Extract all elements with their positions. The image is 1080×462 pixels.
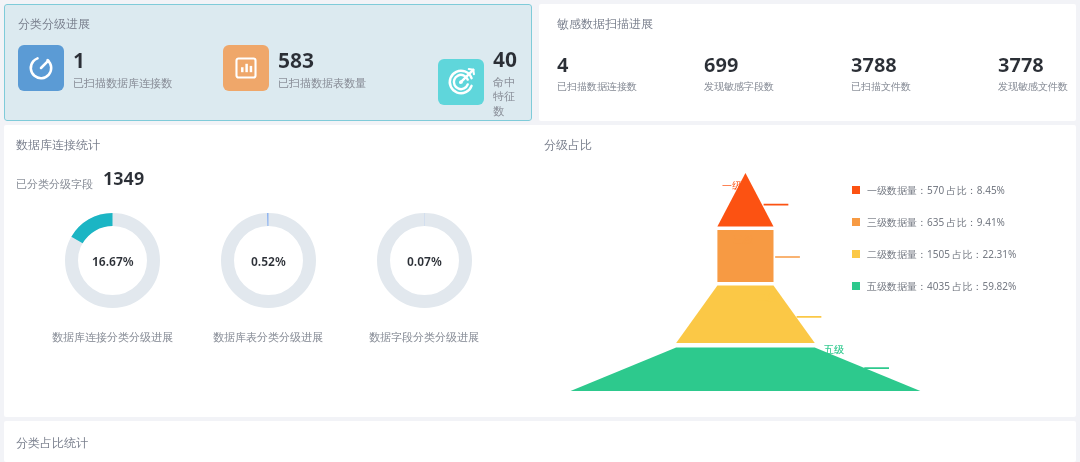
button[interactable]: 命中特征数: [438, 45, 522, 118]
staticText: 583: [278, 46, 315, 75]
staticText: 数据库连接分类分级进展: [52, 330, 173, 344]
staticText: 16.67%: [92, 253, 134, 269]
button[interactable]: 已扫描数据表数量: [223, 45, 366, 91]
button[interactable]: 16.67%: [34, 213, 190, 344]
staticText: 数据字段分类分级进展: [369, 330, 479, 344]
staticText: 二级数据量：1505 占比：22.31%: [867, 247, 1017, 261]
staticText: 已扫描数据连接数: [557, 80, 637, 93]
button[interactable]: 敏感数据扫描进展: [539, 4, 1076, 121]
staticText: 分级占比: [544, 137, 592, 152]
staticText: 敏感数据扫描进展: [557, 16, 653, 31]
staticText: 分类分级进展: [18, 16, 90, 31]
button[interactable]: 699: [704, 51, 851, 93]
staticText: 1349: [103, 166, 145, 191]
staticText: 分类占比统计: [16, 435, 88, 450]
staticText: 40: [493, 45, 518, 74]
button[interactable]: 0.07%: [346, 213, 502, 344]
staticText: 0.07%: [407, 253, 442, 269]
staticText: 0.52%: [251, 253, 286, 269]
button[interactable]: 3778: [998, 51, 1076, 93]
staticText: 3778: [998, 51, 1044, 78]
staticText: 五级: [824, 343, 844, 356]
staticText: 一级: [722, 179, 742, 192]
button[interactable]: 0.52%: [190, 213, 346, 344]
staticText: 699: [704, 51, 739, 78]
staticText: 发现敏感字段数: [704, 80, 774, 93]
staticText: 已扫描数据表数量: [278, 76, 366, 90]
button[interactable]: 已扫描数据库连接数: [18, 45, 172, 91]
button[interactable]: 3788: [851, 51, 998, 93]
staticText: 发现敏感文件数: [998, 80, 1068, 93]
staticText: 一级数据量：570 占比：8.45%: [867, 183, 1005, 197]
staticText: 五级数据量：4035 占比：59.82%: [867, 279, 1017, 293]
staticText: 已扫描文件数: [851, 80, 911, 93]
button[interactable]: 4: [557, 51, 704, 93]
staticText: 3788: [851, 51, 897, 78]
staticText: 1: [73, 46, 86, 75]
other: 已扫描数据表数量: [223, 45, 269, 91]
staticText: 三级数据量：635 占比：9.41%: [867, 215, 1005, 229]
staticText: 命中特征数: [493, 75, 522, 118]
staticText: 数据库连接统计: [16, 137, 100, 152]
other: 已扫描数据库连接数: [18, 45, 64, 91]
staticText: 已扫描数据库连接数: [73, 76, 172, 90]
staticText: 数据库表分类分级进展: [213, 330, 323, 344]
staticText: 已分类分级字段: [16, 177, 93, 191]
button[interactable]: 分类分级进展: [4, 4, 532, 121]
staticText: 4: [557, 51, 569, 78]
other: 命中特征数: [438, 59, 484, 105]
